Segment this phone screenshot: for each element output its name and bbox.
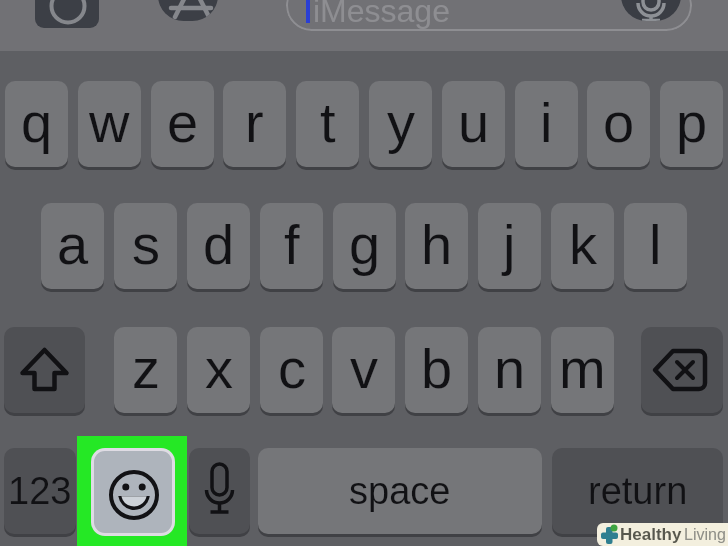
staticText: h	[421, 213, 453, 276]
staticText: f	[284, 213, 300, 276]
staticText: b	[421, 337, 453, 400]
button[interactable]: a	[41, 203, 104, 289]
staticText: y	[387, 91, 415, 154]
button[interactable]: g	[333, 203, 396, 289]
button[interactable]	[286, 0, 692, 31]
staticText: x	[205, 337, 233, 400]
staticText: z	[132, 337, 160, 400]
staticText: Healthy	[620, 525, 682, 544]
button[interactable]: s	[114, 203, 177, 289]
button[interactable]	[641, 327, 723, 413]
staticText: a	[57, 213, 89, 276]
staticText: j	[503, 213, 516, 276]
button[interactable]	[158, 0, 218, 21]
button[interactable]: w	[78, 81, 141, 167]
button[interactable]: l	[624, 203, 687, 289]
staticText: w	[89, 91, 130, 154]
staticText: r	[245, 91, 264, 154]
button[interactable]: d	[187, 203, 250, 289]
button[interactable]	[189, 448, 250, 534]
staticText: i	[540, 91, 553, 154]
button[interactable]: b	[405, 327, 468, 413]
staticText: space	[349, 470, 451, 512]
staticText: t	[320, 91, 336, 154]
staticText: p	[676, 91, 708, 154]
staticText: v	[350, 337, 378, 400]
button[interactable]: e	[151, 81, 214, 167]
staticText: u	[458, 91, 490, 154]
button[interactable]: z	[114, 327, 177, 413]
button[interactable]: h	[405, 203, 468, 289]
staticText: m	[559, 337, 606, 400]
button[interactable]: u	[442, 81, 505, 167]
staticText: iMessage	[313, 0, 450, 29]
button[interactable]: m	[551, 327, 614, 413]
button[interactable]: i	[515, 81, 578, 167]
button[interactable]	[91, 448, 175, 536]
button[interactable]: t	[296, 81, 359, 167]
button[interactable]	[621, 0, 681, 21]
button[interactable]: f	[260, 203, 323, 289]
button[interactable]: v	[332, 327, 395, 413]
staticText: k	[569, 213, 597, 276]
staticText: q	[21, 91, 53, 154]
button[interactable]: x	[187, 327, 250, 413]
staticText: o	[603, 91, 635, 154]
button[interactable]: q	[5, 81, 68, 167]
button[interactable]: c	[260, 327, 323, 413]
staticText: 123	[8, 470, 72, 512]
staticText: d	[203, 213, 235, 276]
button[interactable]: y	[369, 81, 432, 167]
staticText: g	[349, 213, 381, 276]
button[interactable]: p	[660, 81, 723, 167]
staticText: e	[167, 91, 199, 154]
button[interactable]: r	[223, 81, 286, 167]
button[interactable]	[4, 327, 85, 413]
button[interactable]: j	[478, 203, 541, 289]
staticText: c	[278, 337, 306, 400]
button[interactable]: n	[478, 327, 541, 413]
staticText: Living	[684, 526, 726, 544]
staticText: n	[494, 337, 526, 400]
button[interactable]: k	[551, 203, 614, 289]
staticText: return	[588, 470, 688, 512]
button[interactable]: 123	[4, 448, 76, 534]
staticText: l	[649, 213, 662, 276]
button[interactable]: o	[587, 81, 650, 167]
staticText: s	[132, 213, 160, 276]
button[interactable]: space	[258, 448, 542, 534]
button[interactable]	[35, 0, 99, 28]
button[interactable]: return	[552, 448, 723, 534]
